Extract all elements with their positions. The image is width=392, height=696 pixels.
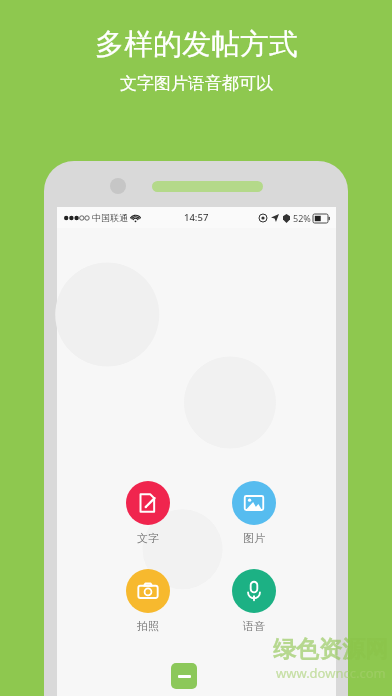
- staticText: 绿色资源网: [273, 635, 388, 664]
- staticText: 拍照: [137, 619, 159, 633]
- staticText: 多样的发帖方式: [95, 26, 298, 63]
- staticText: www.downcc.com: [276, 664, 386, 682]
- button[interactable]: 文字: [117, 481, 179, 545]
- staticText: 语音: [243, 619, 265, 633]
- staticText: 文字图片语音都可以: [120, 73, 273, 94]
- staticText: 图片: [243, 531, 265, 545]
- button[interactable]: 拍照: [117, 569, 179, 633]
- staticText: 中国联通: [92, 212, 128, 223]
- staticText: 文字: [137, 531, 159, 545]
- staticText: 14:57: [184, 211, 209, 224]
- button[interactable]: 语音: [223, 569, 285, 633]
- button[interactable]: Home: [171, 663, 197, 689]
- staticText: 52%: [293, 212, 311, 224]
- button[interactable]: 图片: [223, 481, 285, 545]
